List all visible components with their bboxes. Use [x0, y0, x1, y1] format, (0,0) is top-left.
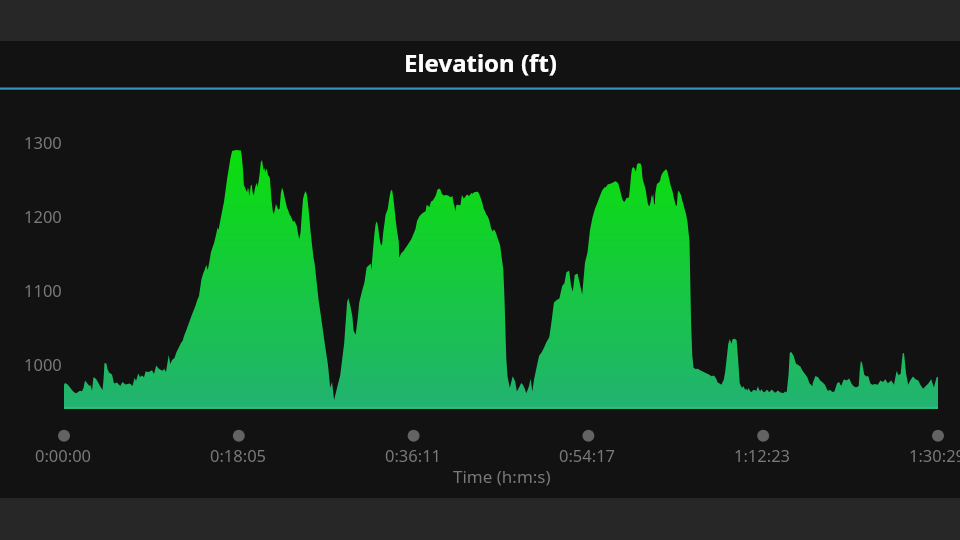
staticText: Elevation (ft)	[404, 46, 557, 79]
staticText: Time (h:m:s)	[453, 465, 551, 488]
staticText: 0:18:05	[210, 444, 267, 466]
staticText: 1300	[24, 131, 62, 153]
staticText: 1100	[24, 279, 62, 301]
staticText: 1:12:23	[734, 444, 791, 466]
staticText: 1000	[24, 353, 62, 375]
staticText: 1:30:29	[909, 444, 960, 466]
staticText: 0:00:00	[35, 444, 92, 466]
staticText: 0:54:17	[559, 444, 616, 466]
other: Elevation chart	[0, 0, 960, 540]
button[interactable]: Elevation (ft)	[0, 38, 960, 87]
staticText: 1200	[24, 205, 62, 227]
staticText: 0:36:11	[385, 444, 442, 466]
